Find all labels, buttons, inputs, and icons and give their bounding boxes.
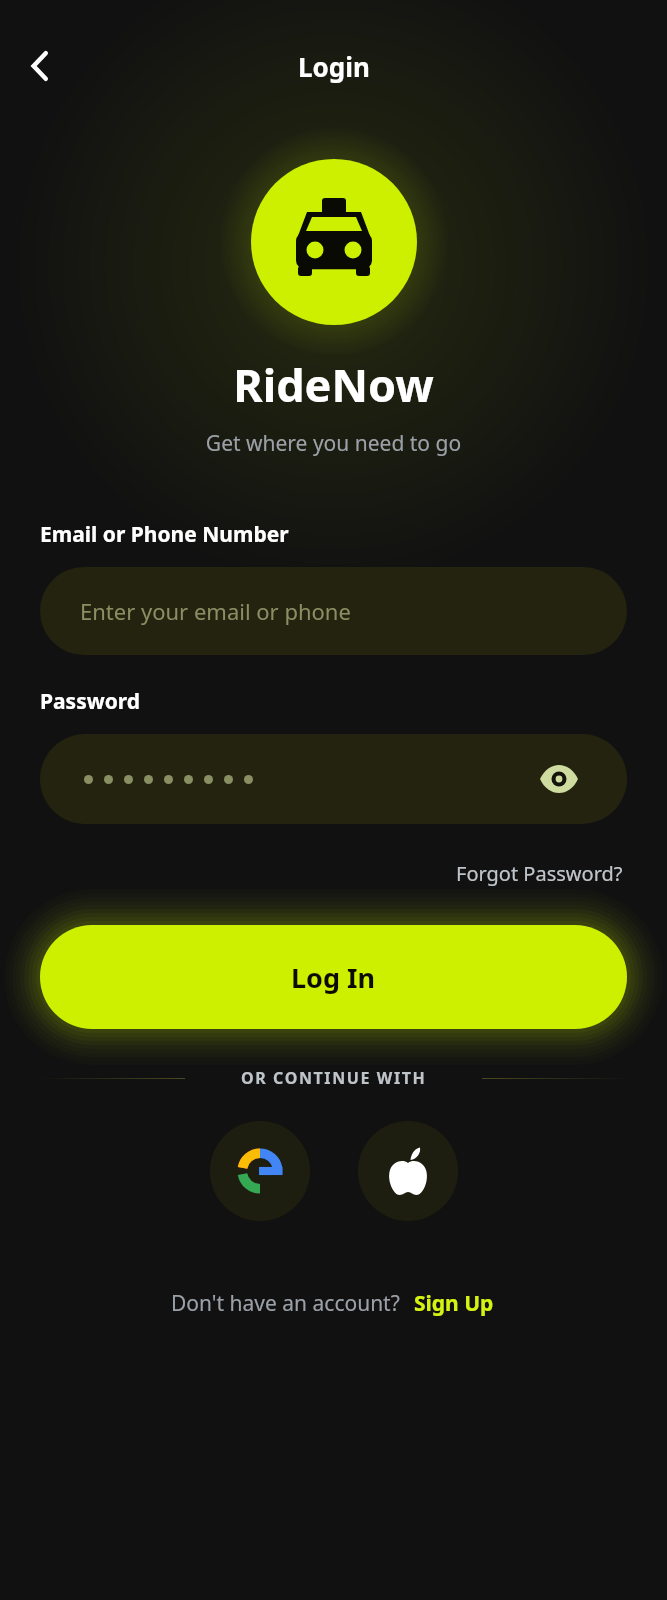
staticText: OR CONTINUE WITH (241, 1067, 427, 1089)
button[interactable]: Continue with Google (210, 1121, 310, 1221)
button[interactable]: Log In (40, 925, 627, 1029)
button[interactable]: Show password (537, 757, 581, 801)
staticText: Enter your email or phone (80, 596, 351, 626)
button[interactable]: Back (14, 40, 66, 92)
button[interactable]: Sign Up (412, 1287, 496, 1320)
staticText: Sign Up (414, 1289, 494, 1318)
button[interactable]: Enter your email or phone (40, 567, 627, 655)
staticText: Forgot Password? (456, 860, 623, 887)
staticText: RideNow (0, 354, 667, 415)
button[interactable]: Forgot Password? (452, 856, 627, 891)
button[interactable]: Continue with Apple (358, 1121, 458, 1221)
staticText: Log In (291, 959, 376, 996)
staticText: Get where you need to go (0, 429, 667, 458)
staticText: Don't have an account? (171, 1289, 400, 1318)
staticText: Email or Phone Number (40, 520, 289, 549)
staticText: Password (40, 687, 141, 716)
staticText: Login (298, 49, 370, 84)
button[interactable]: Show password (40, 734, 627, 824)
